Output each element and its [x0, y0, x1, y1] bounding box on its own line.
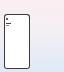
button[interactable]: Menu — [5, 17, 29, 21]
